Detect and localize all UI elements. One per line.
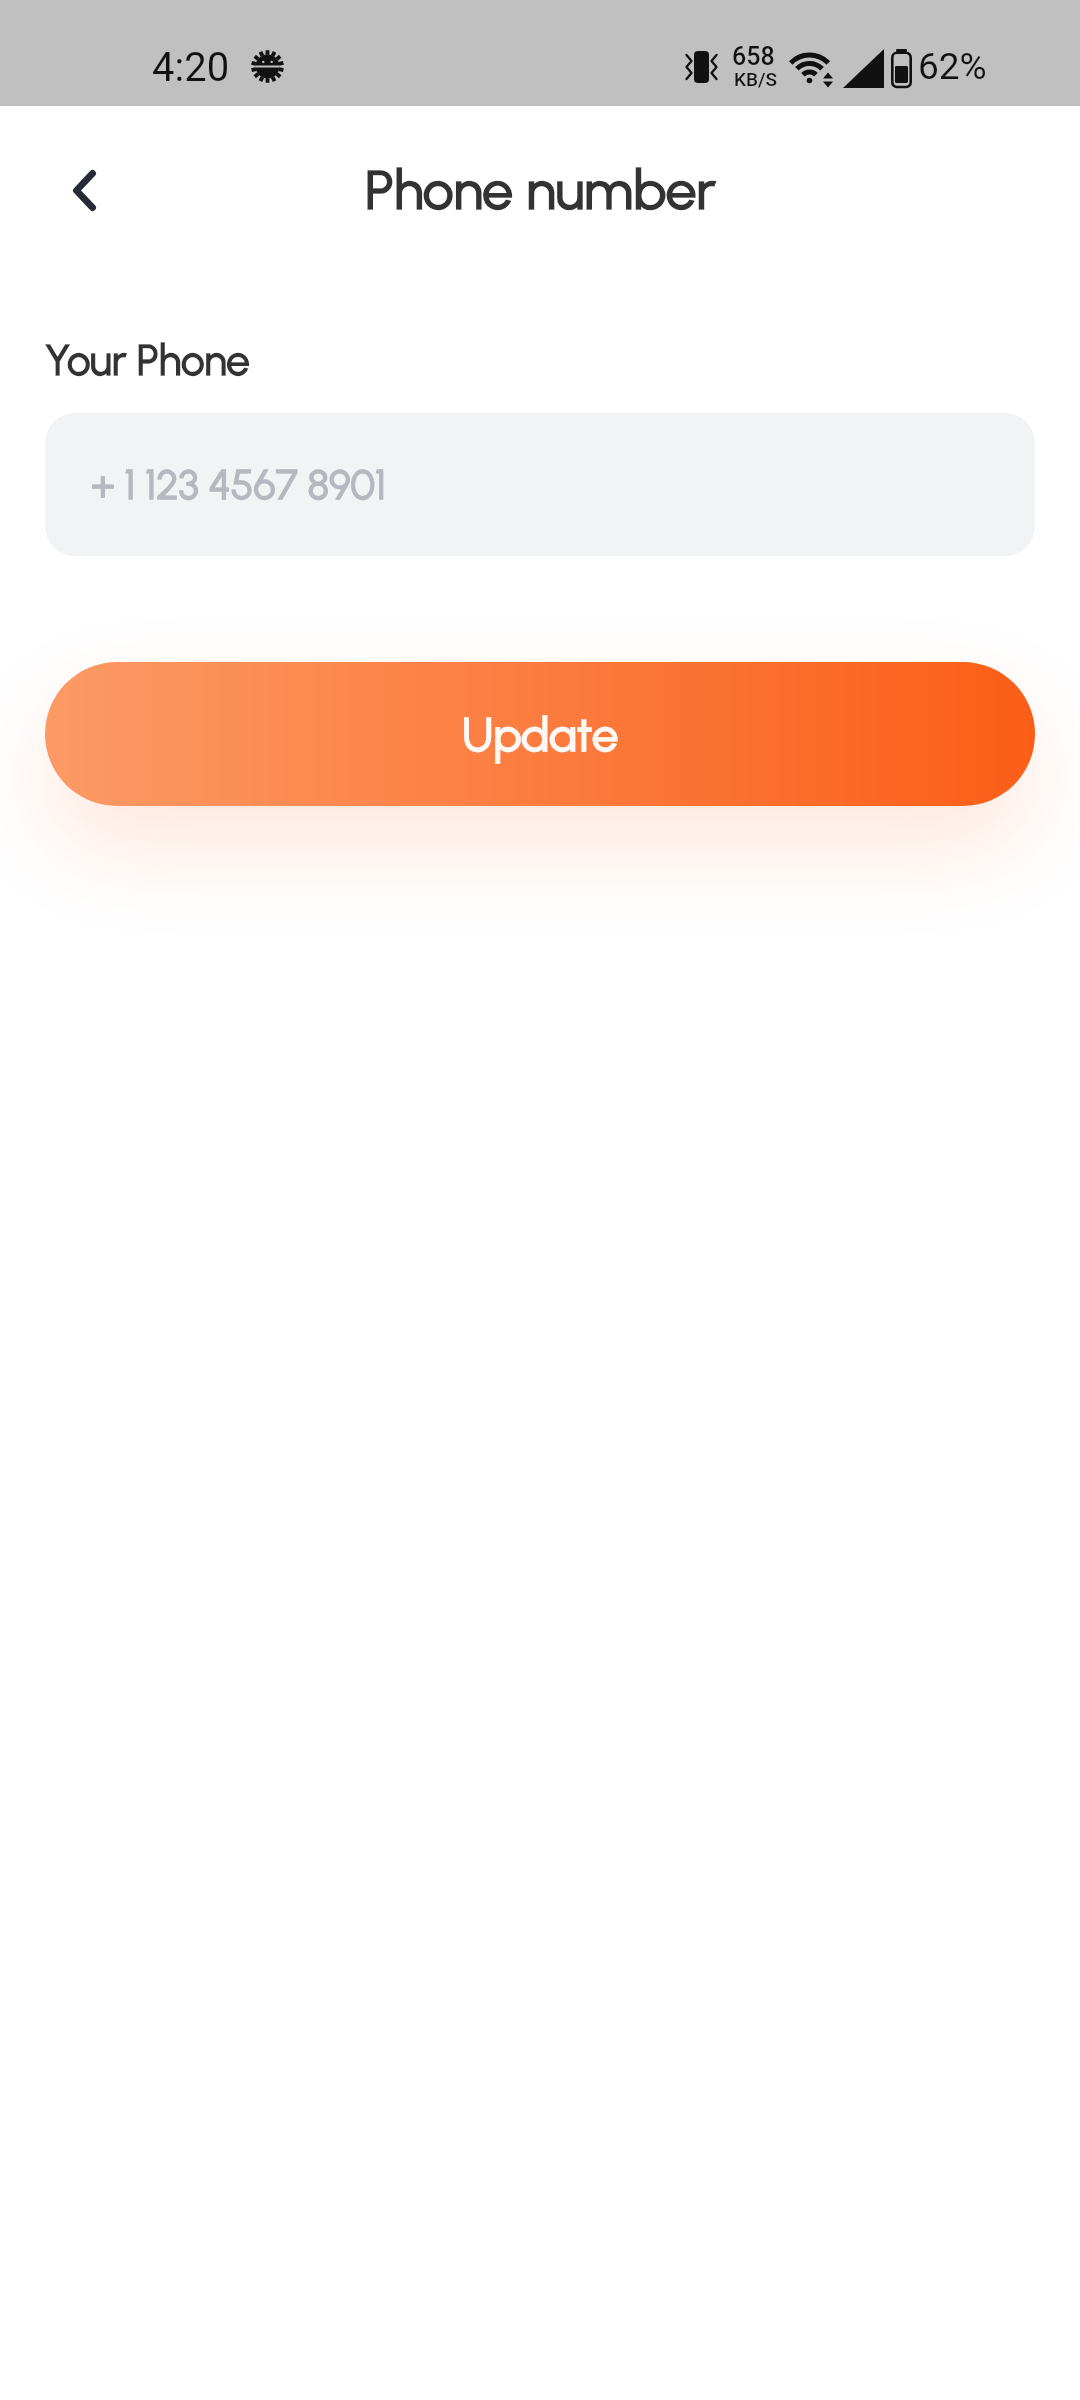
staticText: Your Phone (45, 335, 250, 385)
button[interactable]: + 1 123 4567 8901 (45, 413, 1035, 556)
staticText: Phone number (365, 157, 716, 223)
staticText: Update (462, 706, 619, 762)
staticText: KB/S (734, 68, 777, 90)
button[interactable]: Update (45, 662, 1035, 806)
staticText: + 1 123 4567 8901 (91, 460, 386, 509)
staticText: 4:20 (152, 44, 230, 91)
button[interactable]: Back (42, 148, 126, 232)
staticText: 62% (918, 45, 987, 88)
staticText: 658 (732, 42, 775, 71)
